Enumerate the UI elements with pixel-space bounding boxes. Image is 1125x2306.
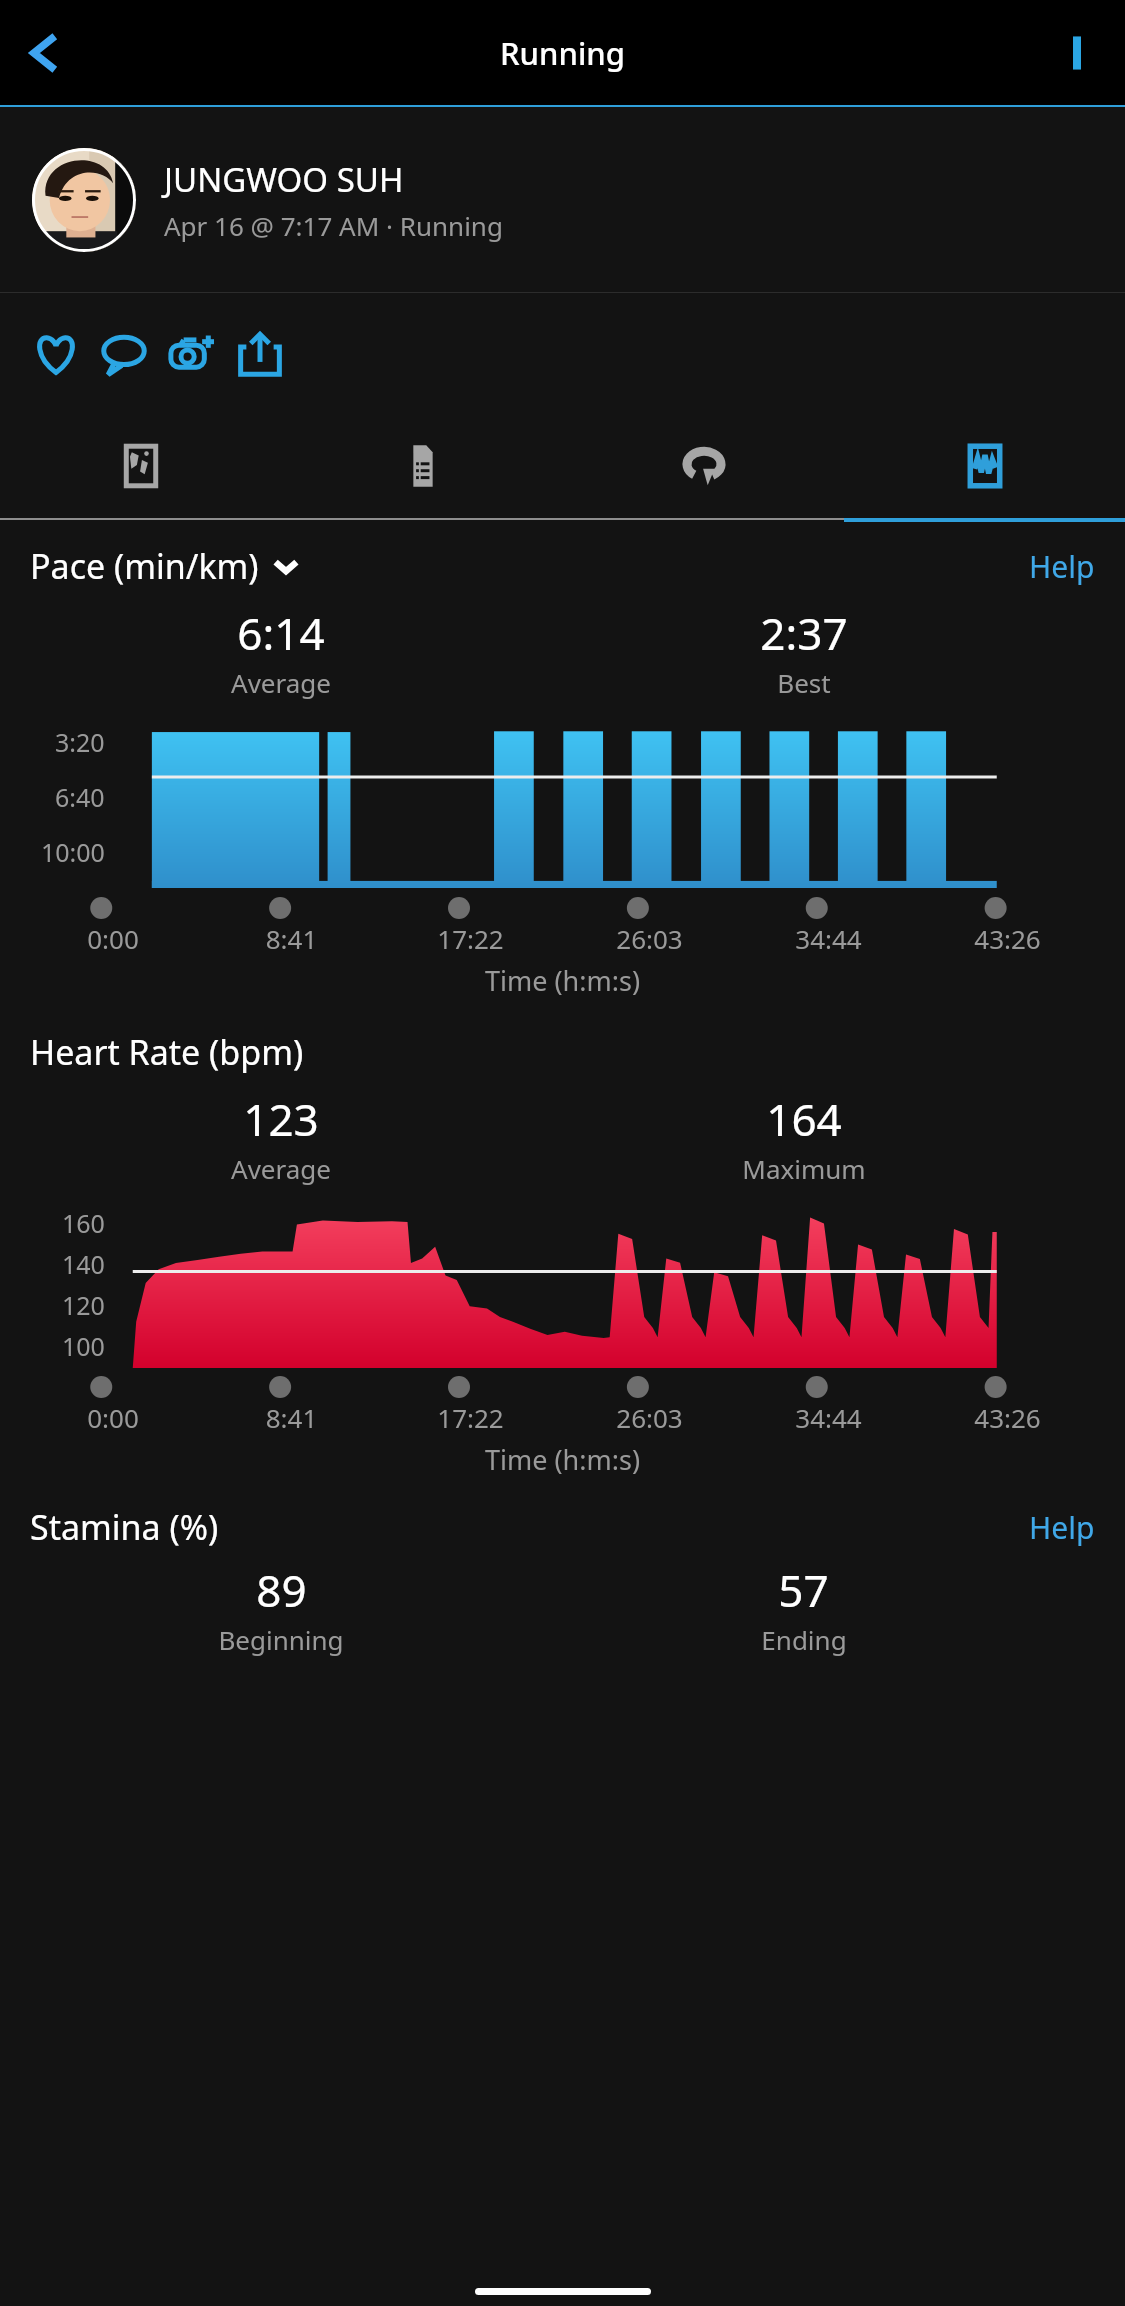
- staticText: 8:41: [202, 1400, 381, 1435]
- button[interactable]: JUNGWOO SUH: [0, 107, 1125, 292]
- button[interactable]: Pace (min/km): [30, 543, 299, 589]
- staticText: 34:44: [739, 921, 918, 956]
- staticText: Time (h:m:s): [0, 1441, 1125, 1478]
- staticText: Time (h:m:s): [0, 962, 1125, 999]
- staticText: Pace (min/km): [30, 543, 259, 589]
- button[interactable]: Add photo: [158, 320, 226, 388]
- staticText: 120: [62, 1288, 105, 1322]
- staticText: Average: [231, 1151, 331, 1186]
- staticText: 43:26: [918, 1400, 1097, 1435]
- staticText: 89: [256, 1560, 307, 1620]
- staticText: Beginning: [218, 1622, 344, 1657]
- staticText: Apr 16 @ 7:17 AM · Running: [164, 208, 503, 243]
- staticText: 17:22: [381, 1400, 560, 1435]
- button[interactable]: Heart Rate (bpm): [30, 1029, 304, 1075]
- staticText: Stamina (%): [30, 1504, 219, 1550]
- staticText: Ending: [761, 1622, 847, 1657]
- staticText: 10:00: [41, 835, 105, 869]
- staticText: JUNGWOO SUH: [164, 157, 404, 202]
- button[interactable]: Stamina (%): [30, 1504, 219, 1550]
- staticText: 34:44: [739, 1400, 918, 1435]
- staticText: 43:26: [918, 921, 1097, 956]
- staticText: Maximum: [742, 1151, 866, 1186]
- staticText: 140: [62, 1247, 105, 1281]
- button[interactable]: More options: [1053, 29, 1101, 77]
- staticText: 8:41: [202, 921, 381, 956]
- button[interactable]: Comment: [90, 320, 158, 388]
- staticText: Heart Rate (bpm): [30, 1029, 304, 1075]
- button[interactable]: Map: [0, 414, 282, 518]
- staticText: 0:00: [24, 1400, 202, 1435]
- staticText: Running: [500, 32, 625, 74]
- staticText: 2:37: [760, 603, 848, 663]
- button[interactable]: Help: [1029, 546, 1095, 587]
- staticText: 26:03: [560, 1400, 739, 1435]
- staticText: 6:40: [55, 780, 105, 814]
- staticText: Average: [231, 665, 331, 700]
- button[interactable]: Details: [282, 414, 563, 518]
- staticText: 26:03: [560, 921, 739, 956]
- staticText: 0:00: [24, 921, 202, 956]
- staticText: 123: [243, 1089, 319, 1149]
- staticText: 164: [766, 1089, 842, 1149]
- staticText: 17:22: [381, 921, 560, 956]
- staticText: 100: [62, 1329, 105, 1363]
- button[interactable]: Share: [226, 320, 294, 388]
- staticText: 57: [778, 1560, 829, 1620]
- button[interactable]: Laps: [563, 414, 844, 518]
- staticText: Best: [777, 665, 831, 700]
- staticText: 3:20: [55, 725, 105, 759]
- staticText: 6:14: [237, 603, 325, 663]
- button[interactable]: Like: [22, 320, 90, 388]
- button[interactable]: Charts: [844, 414, 1125, 518]
- button[interactable]: Help: [1029, 1507, 1095, 1548]
- button[interactable]: Back: [14, 23, 74, 83]
- staticText: 160: [62, 1206, 105, 1240]
